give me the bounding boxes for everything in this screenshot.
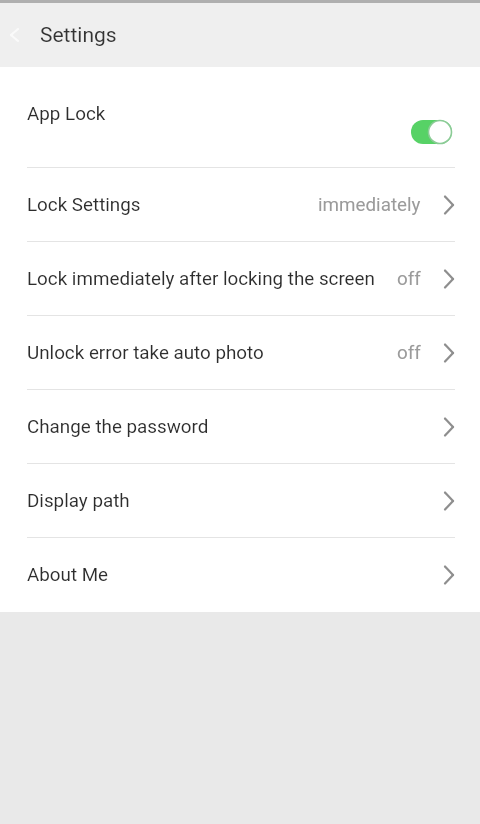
- staticText: Settings: [40, 23, 117, 48]
- button[interactable]: Change the password: [0, 390, 480, 464]
- staticText: immediately: [318, 194, 421, 216]
- staticText: Lock Settings: [27, 194, 141, 216]
- button[interactable]: App Lock: [0, 67, 480, 167]
- button[interactable]: Display path: [0, 464, 480, 538]
- staticText: About Me: [27, 564, 109, 586]
- staticText: Change the password: [27, 416, 209, 438]
- button[interactable]: About Me: [0, 538, 480, 612]
- staticText: off: [397, 342, 421, 364]
- staticText: Display path: [27, 490, 130, 512]
- staticText: Lock immediately after locking the scree…: [27, 268, 375, 290]
- button[interactable]: Lock Settings: [0, 168, 480, 242]
- button[interactable]: Lock immediately after locking the scree…: [0, 242, 480, 316]
- staticText: Unlock error take auto photo: [27, 342, 264, 364]
- staticText: App Lock: [27, 103, 106, 125]
- staticText: off: [397, 268, 421, 290]
- button[interactable]: Unlock error take auto photo: [0, 316, 480, 390]
